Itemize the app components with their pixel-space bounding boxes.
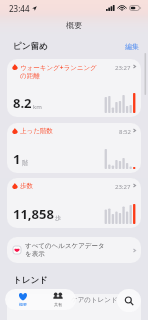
staticText: ケアのトレンド [71, 296, 118, 304]
staticText: ウォーキング+ランニングの距離 [20, 63, 98, 80]
button[interactable]: 編集 [125, 42, 139, 51]
staticText: km [33, 103, 42, 111]
staticText: 概要 [66, 20, 82, 30]
staticText: 1 [13, 150, 21, 168]
staticText: 階 [22, 159, 28, 167]
staticText: 歩 [55, 214, 61, 222]
staticText: トレンド [13, 275, 48, 286]
button[interactable]: ウォーキング+ランニングの距離 [7, 59, 141, 117]
button[interactable]: 上った階数 [7, 123, 141, 173]
staticText: 23:27 [115, 183, 131, 191]
button[interactable]: 検索 [117, 289, 141, 312]
button[interactable]: 歩数 [7, 178, 141, 228]
staticText: 23:44 [9, 3, 30, 14]
button[interactable]: すべてのヘルスケアデータ を表示 [7, 237, 141, 263]
button[interactable]: ケアのトレンド [7, 294, 141, 320]
staticText: 編集 [125, 42, 139, 51]
staticText: 概要 [19, 302, 27, 307]
staticText: 23:27 [115, 64, 131, 72]
button[interactable]: 共有 [40, 289, 76, 310]
staticText: 上った階数 [20, 127, 98, 135]
staticText: すべてのヘルスケアデータ を表示 [25, 242, 133, 258]
staticText: 共有 [54, 302, 62, 307]
button[interactable]: 概要 [5, 289, 40, 310]
staticText: 8.2 [13, 94, 32, 112]
staticText: ピン留め [13, 41, 48, 52]
staticText: 歩数 [20, 182, 98, 190]
staticText: 11,858 [13, 205, 54, 223]
staticText: 8:52 [119, 128, 131, 136]
